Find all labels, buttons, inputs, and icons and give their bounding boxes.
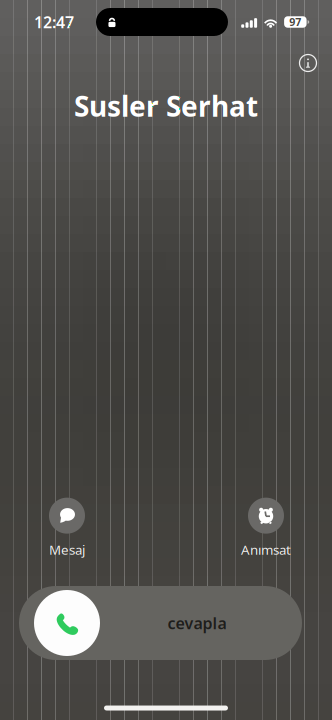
button[interactable]: cevapla (19, 586, 302, 660)
staticText: Anımsat (241, 541, 291, 558)
staticText: 97 (289, 15, 301, 29)
staticText: Susler Serhat (74, 87, 258, 125)
staticText: cevapla (167, 612, 226, 634)
staticText: 12:47 (34, 11, 74, 33)
staticText: Mesaj (49, 541, 85, 558)
button[interactable]: Call details (289, 46, 327, 80)
button[interactable]: Anımsat (222, 499, 310, 557)
button[interactable]: Mesaj (23, 499, 111, 557)
